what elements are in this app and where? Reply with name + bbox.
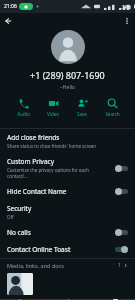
staticText: Video	[47, 111, 59, 117]
button[interactable]: No calls	[0, 224, 135, 241]
button[interactable]: Back	[14, 299, 26, 300]
button[interactable]: More options	[119, 13, 135, 29]
button[interactable]: Profile photo	[51, 30, 85, 64]
staticText: Add close friends	[7, 133, 60, 142]
button[interactable]: Audio	[9, 97, 37, 118]
button[interactable]: Back	[0, 13, 16, 29]
staticText: Contact Online Toast	[7, 245, 71, 254]
button[interactable]: Toggle	[115, 188, 128, 195]
staticText: Save	[77, 111, 87, 117]
button[interactable]: Custom Privacy	[0, 153, 135, 183]
staticText: 34%	[122, 4, 131, 10]
button[interactable]: Home	[62, 299, 74, 300]
staticText: Off	[7, 214, 14, 220]
button[interactable]: Media thumbnail	[7, 273, 33, 295]
button[interactable]: Recents	[109, 299, 121, 300]
staticText: 21:06	[4, 3, 17, 10]
button[interactable]: Hide Contact Name	[0, 183, 135, 200]
staticText: 1	[118, 262, 121, 269]
staticText: Security	[7, 204, 32, 213]
staticText: Media, links, and docs	[7, 262, 64, 269]
staticText: +1 (289) 807-1690	[30, 69, 105, 81]
button[interactable]: Toggle	[115, 246, 128, 253]
button[interactable]: Toggle	[115, 165, 128, 172]
staticText: Search	[105, 111, 120, 117]
button[interactable]: Video	[39, 97, 67, 118]
staticText: Share status to close friends' home scre…	[7, 143, 97, 149]
button[interactable]: Toggle	[115, 229, 128, 236]
staticText: Customize the privacy options for each c…	[7, 167, 111, 179]
button[interactable]: Search	[98, 97, 126, 118]
staticText: ~Hello	[60, 84, 75, 91]
staticText: Custom Privacy	[7, 157, 54, 166]
button[interactable]: Contact Online Toast	[0, 241, 135, 258]
button[interactable]: Media, links, and docs	[0, 259, 135, 299]
staticText: Audio	[17, 111, 30, 117]
staticText: Hide Contact Name	[7, 187, 67, 196]
button[interactable]: Security	[0, 200, 135, 224]
button[interactable]: Add close friends	[0, 129, 135, 153]
button[interactable]: Save	[68, 97, 96, 118]
staticText: No calls	[7, 228, 31, 237]
